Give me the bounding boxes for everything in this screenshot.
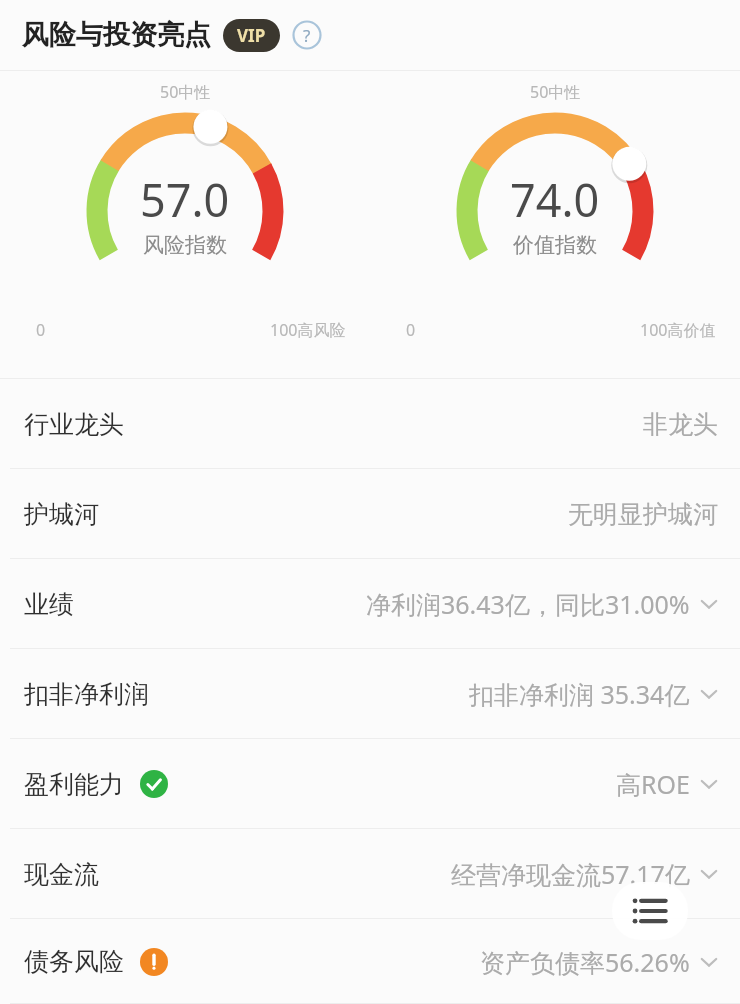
staticText: 风险与投资亮点	[22, 18, 211, 52]
staticText: 74.0	[510, 169, 600, 230]
staticText: VIP	[237, 24, 266, 47]
staticText: 100高风险	[270, 319, 346, 341]
staticText: 无明显护城河	[568, 499, 718, 530]
staticText: 50中性	[530, 81, 581, 103]
staticText: 价值指数	[513, 232, 597, 258]
staticText: 债务风险	[24, 946, 124, 977]
button[interactable]: 行业龙头	[0, 379, 740, 469]
button[interactable]: 盈利能力	[0, 739, 740, 829]
staticText: 非龙头	[643, 409, 718, 440]
staticText: 100高价值	[640, 319, 716, 341]
button[interactable]: 业绩	[0, 559, 740, 649]
staticText: 50中性	[160, 81, 211, 103]
button[interactable]: 护城河	[0, 469, 740, 559]
staticText: 风险指数	[143, 232, 227, 258]
button[interactable]: 扣非净利润	[0, 649, 740, 739]
staticText: ?	[303, 24, 311, 47]
staticText: 净利润36.43亿，同比31.00%	[366, 587, 690, 621]
button[interactable]: 现金流	[0, 829, 740, 919]
staticText: 盈利能力	[24, 769, 124, 800]
staticText: 现金流	[24, 859, 99, 890]
staticText: 业绩	[24, 589, 74, 620]
staticText: 行业龙头	[24, 409, 124, 440]
staticText: 0	[406, 319, 416, 341]
button[interactable]: Help	[292, 20, 322, 50]
staticText: 经营净现金流57.17亿	[451, 857, 690, 891]
staticText: 护城河	[24, 499, 99, 530]
staticText: 高ROE	[616, 767, 690, 801]
staticText: 0	[36, 319, 46, 341]
staticText: 资产负债率56.26%	[480, 945, 690, 979]
staticText: 扣非净利润	[24, 679, 149, 710]
button[interactable]: 债务风险	[0, 919, 740, 1004]
button[interactable]: VIP	[223, 19, 280, 52]
button[interactable]: More list options	[612, 882, 688, 940]
staticText: 扣非净利润 35.34亿	[469, 677, 690, 711]
staticText: 57.0	[140, 169, 230, 230]
